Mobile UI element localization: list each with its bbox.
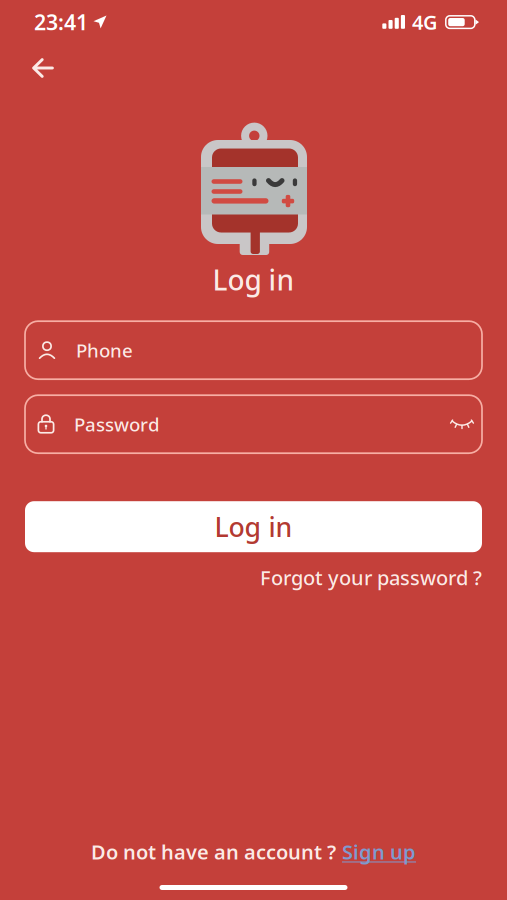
staticText: Log in	[214, 509, 292, 544]
staticText: Forgot your password ?	[260, 564, 482, 591]
staticText: Log in	[212, 261, 294, 298]
staticText: Password	[74, 412, 160, 437]
button[interactable]: Forgot your password ?	[260, 564, 482, 591]
staticText: 23:41	[34, 8, 88, 36]
staticText: Sign up	[342, 838, 416, 865]
button[interactable]: Sign up	[342, 838, 416, 865]
staticText: Do not have an account ?	[91, 838, 336, 865]
staticText: 4G	[412, 9, 438, 35]
button[interactable]: Log in	[25, 501, 482, 552]
staticText: Phone	[76, 338, 133, 363]
button[interactable]: Back	[22, 48, 64, 88]
